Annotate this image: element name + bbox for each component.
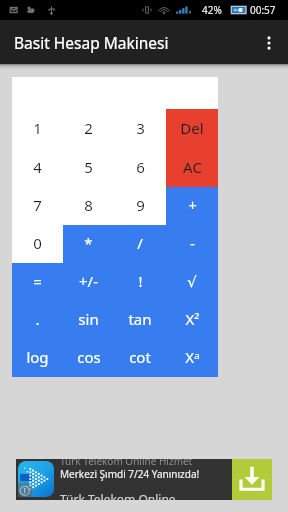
staticText: Türk Telekom Online	[60, 491, 176, 500]
button[interactable]: Del	[166, 109, 218, 148]
button[interactable]: 2	[63, 109, 114, 148]
staticText: 1	[33, 118, 42, 138]
button[interactable]: Download	[232, 459, 272, 500]
button[interactable]: 8	[63, 187, 114, 225]
staticText: 42%	[202, 3, 222, 17]
button[interactable]: log	[12, 339, 63, 377]
staticText: !	[138, 271, 143, 291]
button[interactable]: tan	[114, 301, 166, 339]
staticText: Del	[180, 118, 204, 138]
staticText: √	[187, 273, 197, 290]
button[interactable]: 1	[12, 109, 63, 148]
button[interactable]: 4	[12, 148, 63, 187]
staticText: -	[190, 233, 195, 253]
button[interactable]: 0	[12, 225, 63, 263]
staticText: 5	[84, 157, 93, 177]
button[interactable]: X²	[166, 301, 218, 339]
button[interactable]: +	[166, 187, 218, 225]
staticText: Xᵃ	[185, 347, 200, 367]
staticText: +/-	[79, 271, 98, 291]
staticText: .	[35, 309, 40, 329]
button[interactable]: sin	[63, 301, 114, 339]
staticText: 3	[136, 118, 145, 138]
staticText: *	[84, 233, 93, 253]
staticText: Merkezi Şımdi 7/24 Yanınızda!	[60, 467, 200, 481]
button[interactable]: 9	[114, 187, 166, 225]
staticText: Türk Telekom Online Hizmet	[60, 459, 193, 468]
staticText: AC	[183, 157, 202, 177]
button[interactable]: Xᵃ	[166, 339, 218, 377]
staticText: sin	[78, 309, 99, 329]
button[interactable]: AC	[166, 148, 218, 187]
button[interactable]: !	[114, 263, 166, 301]
button[interactable]: =	[12, 263, 63, 301]
staticText: 2	[84, 118, 93, 138]
staticText: /	[137, 233, 143, 253]
button[interactable]: *	[63, 225, 114, 263]
staticText: log	[26, 347, 49, 367]
button[interactable]: More options	[252, 20, 288, 64]
staticText: cot	[129, 347, 151, 367]
staticText: =	[33, 271, 42, 291]
button[interactable]: +/-	[63, 263, 114, 301]
staticText: tan	[128, 309, 152, 329]
staticText: 4	[33, 157, 42, 177]
staticText: 00:57	[250, 3, 276, 17]
button[interactable]: /	[114, 225, 166, 263]
button[interactable]: 7	[12, 187, 63, 225]
staticText: +	[188, 195, 197, 215]
button[interactable]: .	[12, 301, 63, 339]
staticText: 8	[84, 195, 93, 215]
button[interactable]: cot	[114, 339, 166, 377]
button[interactable]: Türk Telekom Online Hizmet	[16, 459, 272, 500]
button[interactable]: -	[166, 225, 218, 263]
staticText: X²	[185, 309, 200, 329]
button[interactable]: cos	[63, 339, 114, 377]
button[interactable]: 3	[114, 109, 166, 148]
staticText: 6	[136, 157, 145, 177]
staticText: cos	[77, 347, 101, 367]
staticText: 0	[33, 233, 42, 253]
staticText: Basit Hesap Makinesi	[14, 32, 169, 53]
button[interactable]: √	[166, 263, 218, 301]
button[interactable]: 5	[63, 148, 114, 187]
button[interactable]: 6	[114, 148, 166, 187]
staticText: 7	[33, 195, 42, 215]
staticText: 9	[136, 195, 145, 215]
